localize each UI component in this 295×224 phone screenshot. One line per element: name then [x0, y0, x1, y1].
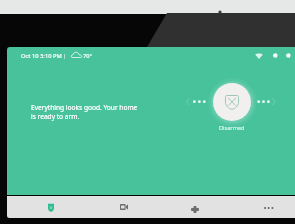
- staticText: |: [63, 52, 67, 60]
- button[interactable]: Add device: [159, 196, 231, 218]
- staticText: Disarmed: [219, 124, 245, 132]
- button[interactable]: Disarmed: [213, 83, 251, 121]
- button[interactable]: Next mode: [256, 94, 280, 110]
- other: Do not disturb: [273, 53, 278, 58]
- button[interactable]: Cameras: [88, 196, 160, 218]
- button[interactable]: Previous mode: [183, 94, 207, 110]
- other: Sound: [286, 53, 291, 58]
- staticText: 70°: [83, 52, 93, 60]
- button[interactable]: Security: [15, 196, 87, 218]
- other: Wi-Fi: [255, 53, 263, 59]
- staticText: Everything looks good. Your home is read…: [31, 103, 138, 121]
- button[interactable]: More: [232, 196, 295, 218]
- staticText: Oct 10 3:10 PM: [21, 52, 62, 60]
